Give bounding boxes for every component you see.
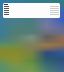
button[interactable] [3,3,60,18]
